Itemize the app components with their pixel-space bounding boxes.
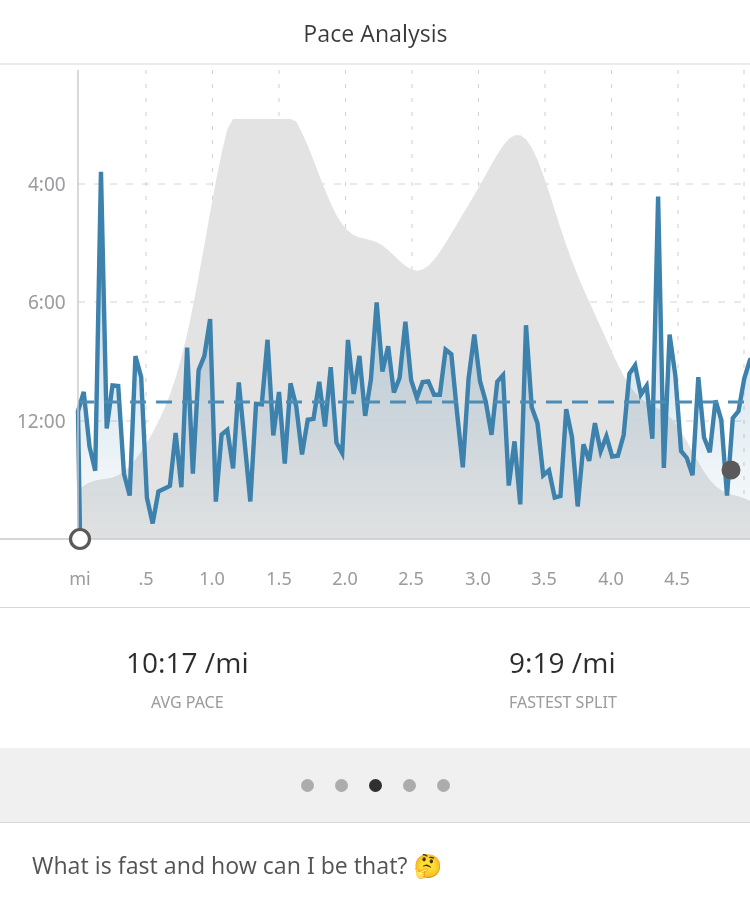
- staticText: Pace Analysis: [303, 17, 448, 48]
- staticText: 10:17 /mi: [126, 643, 249, 681]
- button[interactable]: 9:19 /mi: [375, 643, 750, 713]
- staticText: 4.5: [664, 566, 690, 590]
- staticText: 9:19 /mi: [509, 643, 616, 681]
- button[interactable]: Page 5: [437, 779, 450, 792]
- staticText: 3.0: [465, 566, 491, 590]
- staticText: 2.0: [332, 566, 358, 590]
- staticText: 4:00: [28, 171, 66, 197]
- staticText: 1.0: [199, 566, 225, 590]
- staticText: 3.5: [531, 566, 557, 590]
- button[interactable]: Page 1: [301, 779, 314, 792]
- staticText: What is fast and how can I be that? 🤔: [32, 849, 443, 880]
- button[interactable]: 10:17 /mi: [0, 643, 375, 713]
- staticText: 4.0: [598, 566, 624, 590]
- staticText: AVG PACE: [151, 691, 224, 713]
- staticText: 1.5: [266, 566, 292, 590]
- button[interactable]: Page 3: [369, 779, 382, 792]
- staticText: FASTEST SPLIT: [509, 691, 617, 713]
- button[interactable]: Page 4: [403, 779, 416, 792]
- staticText: mi: [69, 566, 91, 590]
- staticText: 6:00: [28, 289, 66, 315]
- staticText: 2.5: [398, 566, 424, 590]
- button[interactable]: Page 2: [335, 779, 348, 792]
- staticText: .5: [138, 566, 154, 590]
- staticText: 12:00: [17, 408, 66, 434]
- button[interactable]: What is fast and how can I be that? 🤔: [0, 823, 750, 905]
